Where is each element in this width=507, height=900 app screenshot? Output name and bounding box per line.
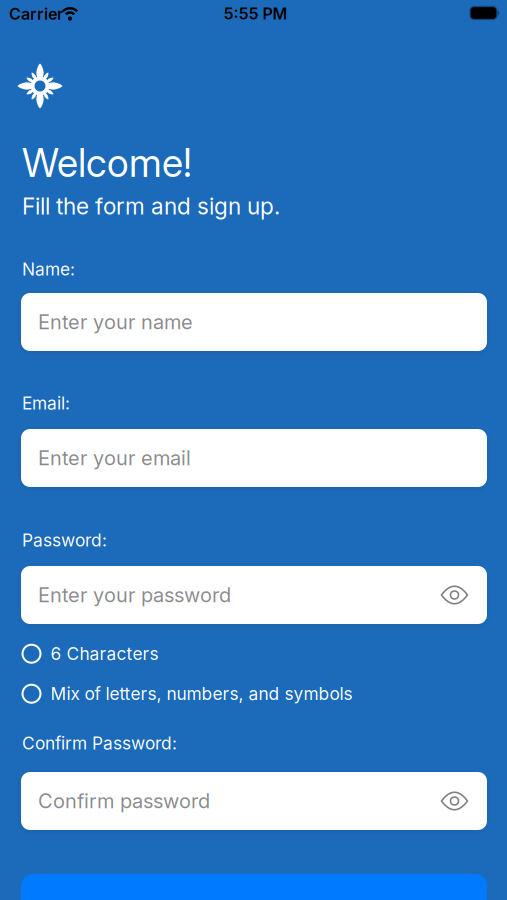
staticText: Confirm Password:: [22, 733, 177, 753]
button[interactable]: Mix of letters, numbers, and symbols: [22, 683, 352, 704]
button[interactable]: Password text field: [21, 566, 487, 624]
staticText: Password:: [22, 530, 107, 550]
staticText: Fill the form and sign up.: [22, 193, 280, 220]
staticText: Welcome!: [22, 140, 192, 186]
staticText: Enter your password: [38, 583, 231, 607]
button[interactable]: Name text field: [21, 293, 487, 351]
button[interactable]: Confirm password text field: [21, 772, 487, 830]
staticText: 5:55 PM: [223, 4, 287, 23]
staticText: 6 Characters: [50, 643, 158, 664]
button[interactable]: Show password: [440, 585, 468, 605]
staticText: Confirm password: [38, 789, 210, 813]
button[interactable]: Email text field: [21, 429, 487, 487]
staticText: Email:: [22, 393, 70, 413]
staticText: Enter your email: [38, 446, 191, 470]
staticText: Carrier: [9, 4, 63, 23]
button[interactable]: Show password: [440, 791, 468, 811]
staticText: Mix of letters, numbers, and symbols: [50, 683, 352, 704]
button[interactable]: 6 Characters: [22, 643, 158, 664]
button[interactable]: Sign up: [21, 874, 487, 900]
staticText: Name:: [22, 259, 75, 279]
staticText: Enter your name: [38, 310, 193, 334]
